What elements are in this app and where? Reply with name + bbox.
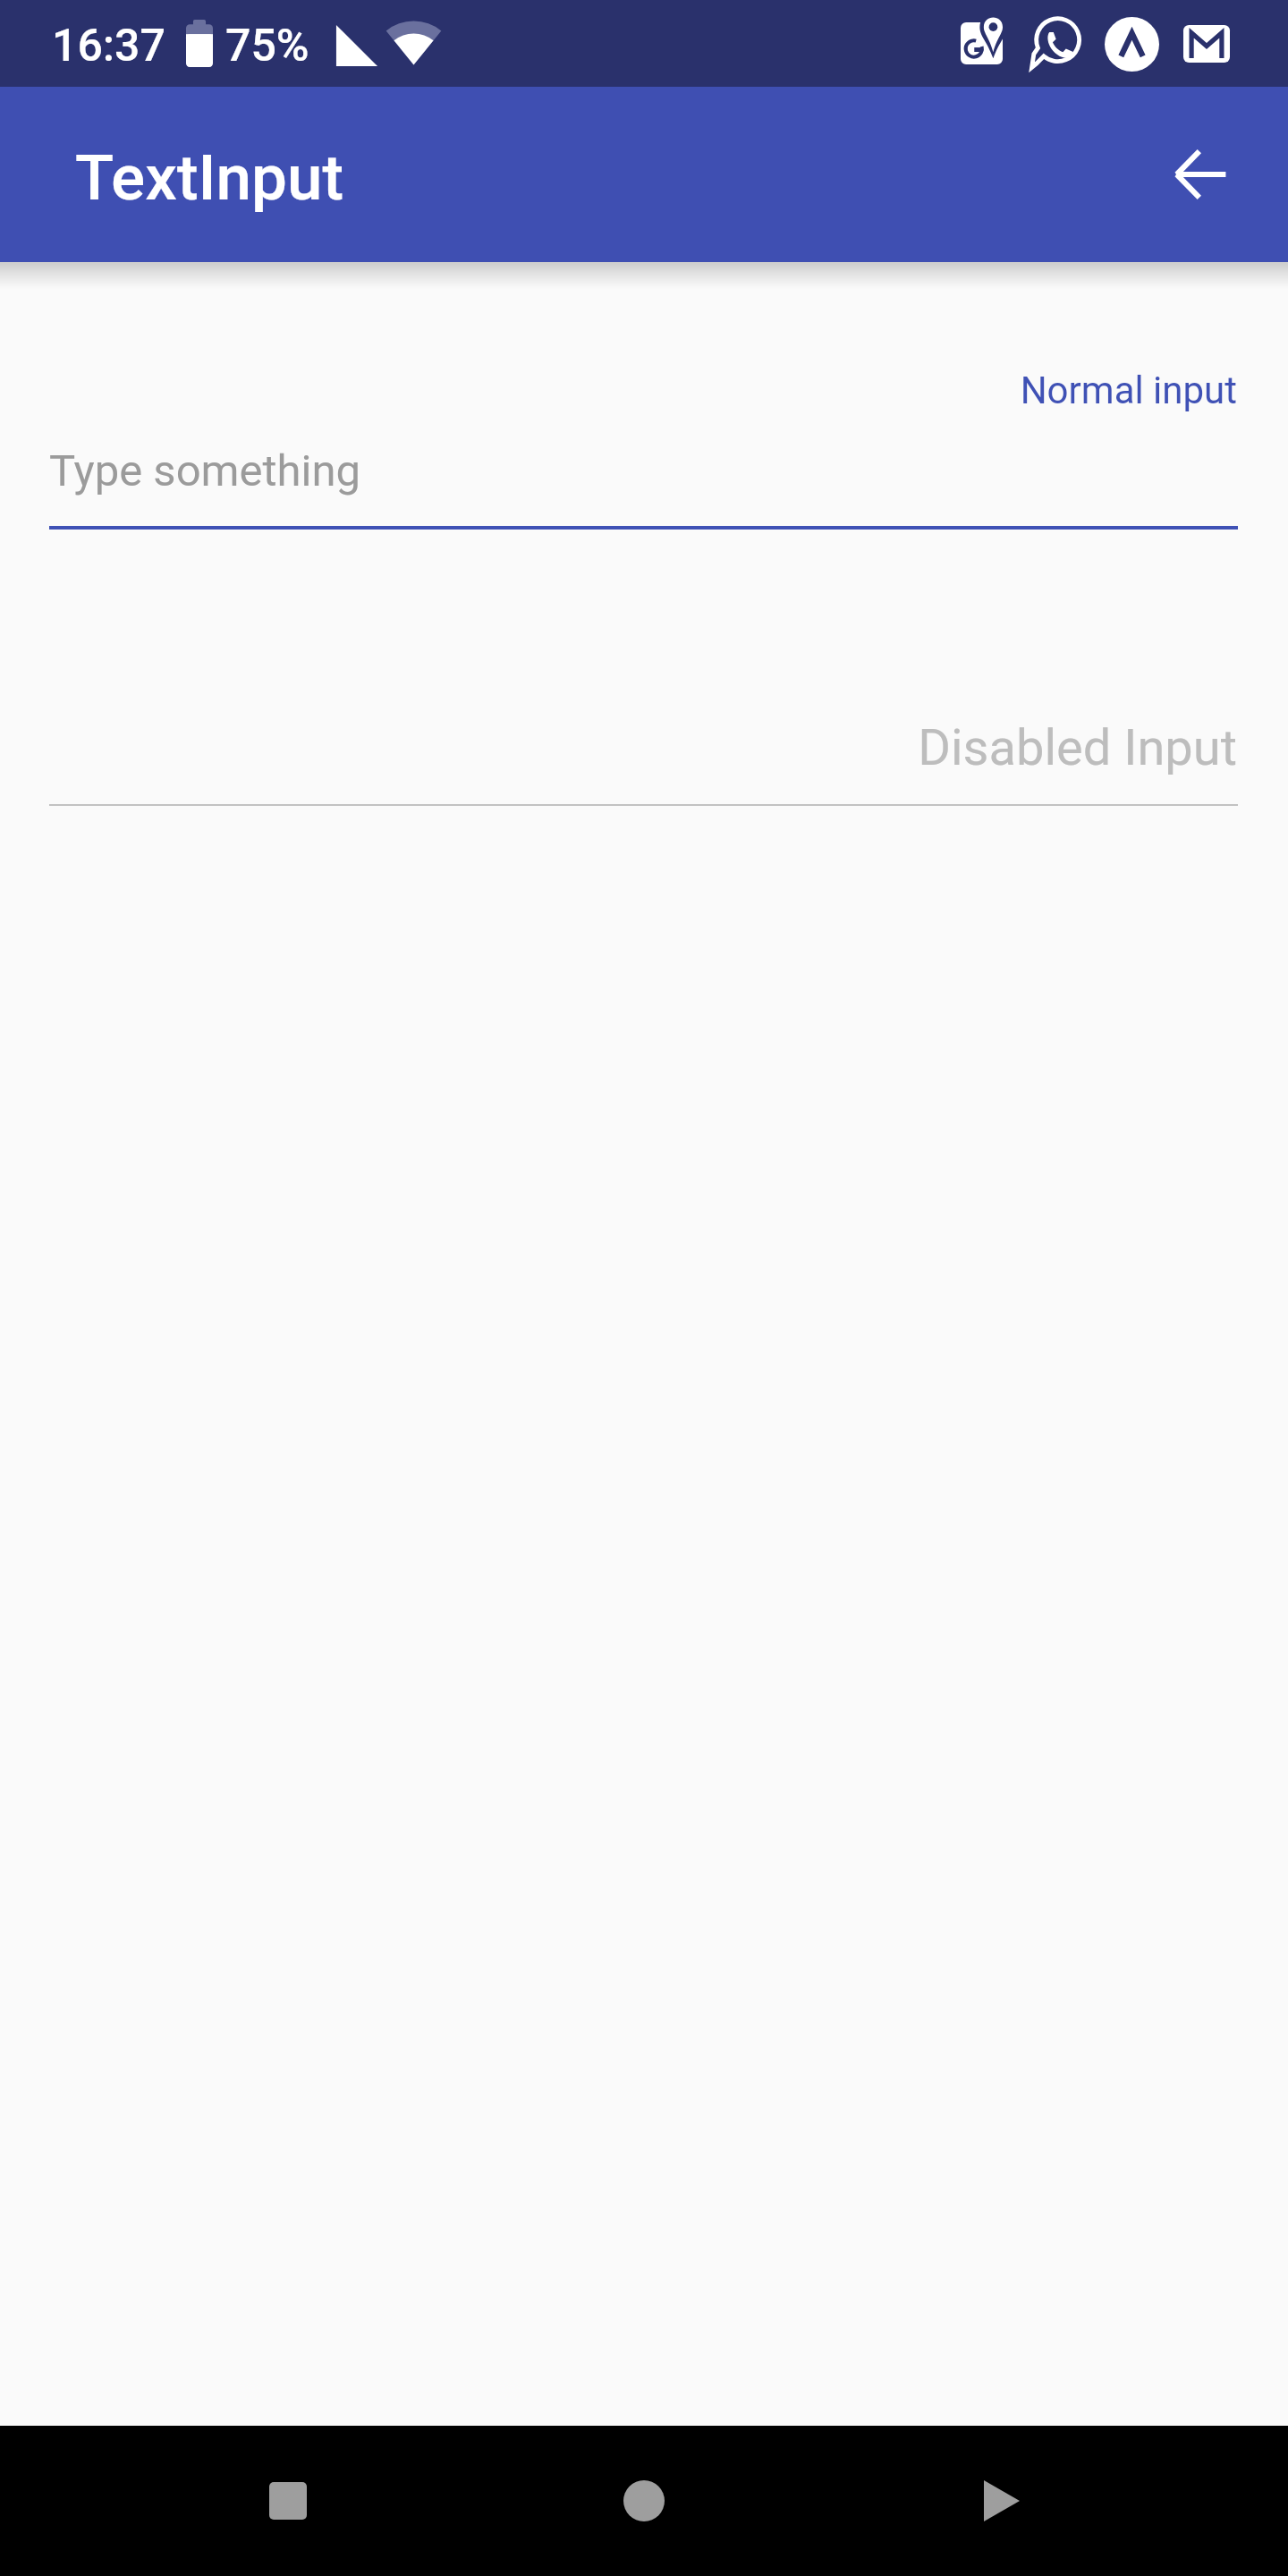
staticText: Disabled Input — [50, 718, 1237, 777]
button[interactable]: Recent apps — [216, 2429, 360, 2572]
staticText: 16:37 — [52, 20, 165, 72]
staticText: Normal input — [50, 369, 1237, 412]
staticText: Type something — [49, 445, 361, 496]
button[interactable]: Home — [572, 2429, 716, 2572]
staticText: 75% — [225, 20, 309, 72]
staticText: TextInput — [75, 140, 344, 215]
button[interactable]: Back — [930, 2429, 1073, 2572]
button[interactable]: Back — [1157, 131, 1243, 217]
button[interactable]: Normal input — [0, 358, 1288, 530]
